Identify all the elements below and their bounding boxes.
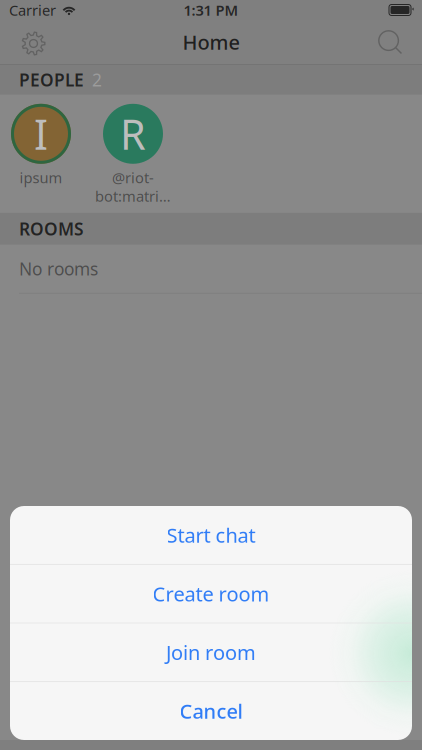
button[interactable]: I: [0, 95, 87, 213]
button[interactable]: Settings: [10, 20, 54, 64]
staticText: 1:31 PM: [183, 0, 238, 20]
staticText: I: [34, 106, 48, 161]
button[interactable]: Cancel: [10, 682, 412, 740]
staticText: ROOMS: [19, 217, 84, 240]
staticText: Join room: [166, 639, 256, 666]
button[interactable]: Start chat: [10, 506, 412, 564]
staticText: R: [120, 106, 146, 161]
button[interactable]: Create room: [10, 565, 412, 623]
staticText: Create room: [152, 580, 269, 607]
staticText: bot:matri…: [95, 186, 171, 206]
staticText: @riot-: [112, 168, 154, 187]
staticText: No rooms: [19, 257, 98, 280]
staticText: ipsum: [19, 168, 62, 187]
staticText: Home: [182, 29, 239, 55]
button[interactable]: R: [87, 95, 179, 213]
staticText: 2: [92, 68, 102, 91]
staticText: Carrier: [9, 0, 56, 20]
button[interactable]: Search: [368, 20, 412, 64]
staticText: Cancel: [179, 698, 242, 724]
staticText: Start chat: [166, 522, 255, 548]
button[interactable]: Join room: [10, 623, 412, 681]
staticText: PEOPLE: [19, 68, 84, 91]
